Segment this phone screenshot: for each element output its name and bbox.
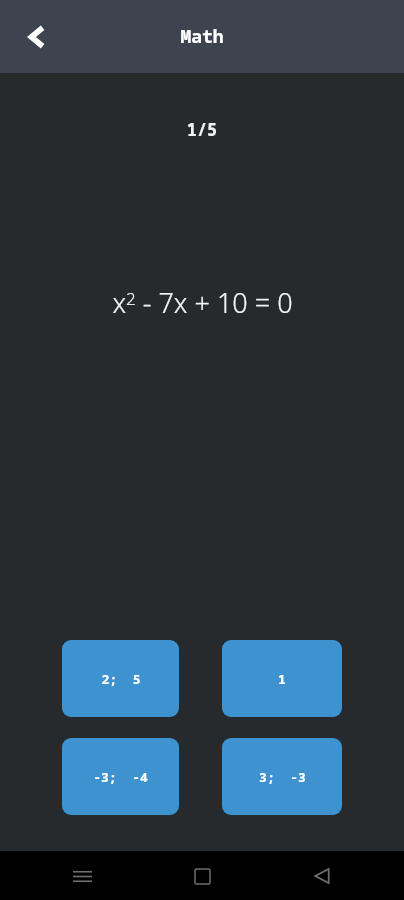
staticText: x2 - 7x + 10 = 0 (112, 284, 293, 321)
staticText: 1 (278, 670, 286, 688)
button[interactable]: -3; -4 (62, 738, 179, 815)
button[interactable]: Back (298, 852, 346, 900)
staticText: 3; -3 (259, 768, 306, 786)
button[interactable]: Recents (58, 852, 106, 900)
staticText: 2; 5 (101, 670, 141, 688)
button[interactable]: 3; -3 (222, 738, 342, 815)
staticText: -3; -4 (93, 768, 148, 786)
staticText: Math (0, 24, 404, 49)
button[interactable]: Home (178, 852, 226, 900)
staticText: 1/5 (0, 118, 404, 141)
button[interactable]: Back (10, 10, 64, 64)
button[interactable]: 2; 5 (62, 640, 179, 717)
button[interactable]: 1 (222, 640, 342, 717)
